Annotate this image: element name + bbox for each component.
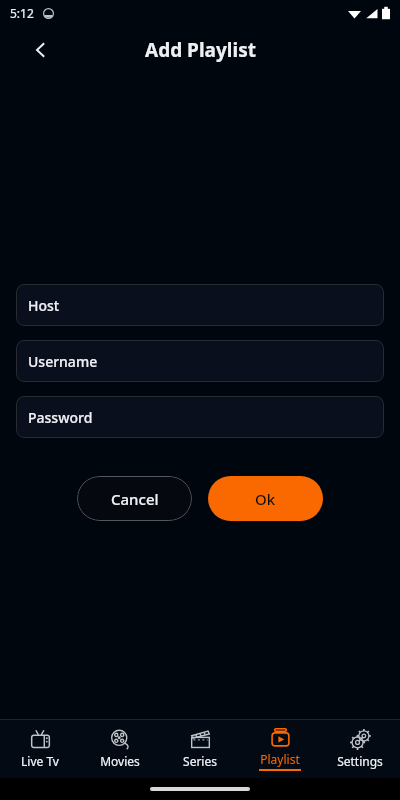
staticText: Username — [28, 352, 98, 371]
button[interactable]: Series — [160, 729, 240, 769]
staticText: Host — [28, 296, 60, 315]
staticText: Playlist — [260, 751, 300, 767]
staticText: 5:12 — [10, 5, 34, 21]
staticText: Live Tv — [21, 753, 59, 769]
staticText: Movies — [100, 753, 140, 769]
staticText: Series — [183, 753, 217, 769]
button[interactable]: Username — [16, 340, 384, 382]
staticText: Add Playlist — [145, 37, 256, 63]
button[interactable]: Ok — [208, 476, 323, 521]
staticText: Cancel — [111, 489, 159, 509]
button[interactable]: Settings — [320, 729, 400, 769]
button[interactable]: Movies — [80, 729, 160, 769]
button[interactable]: Playlist — [240, 727, 320, 771]
staticText: Password — [28, 408, 93, 427]
staticText: Ok — [255, 489, 276, 509]
button[interactable]: Host — [16, 284, 384, 326]
staticText: Settings — [337, 753, 383, 769]
button[interactable]: Live Tv — [0, 729, 80, 769]
button[interactable]: Cancel — [77, 476, 192, 521]
button[interactable]: Back — [22, 31, 60, 69]
button[interactable]: Password — [16, 396, 384, 438]
